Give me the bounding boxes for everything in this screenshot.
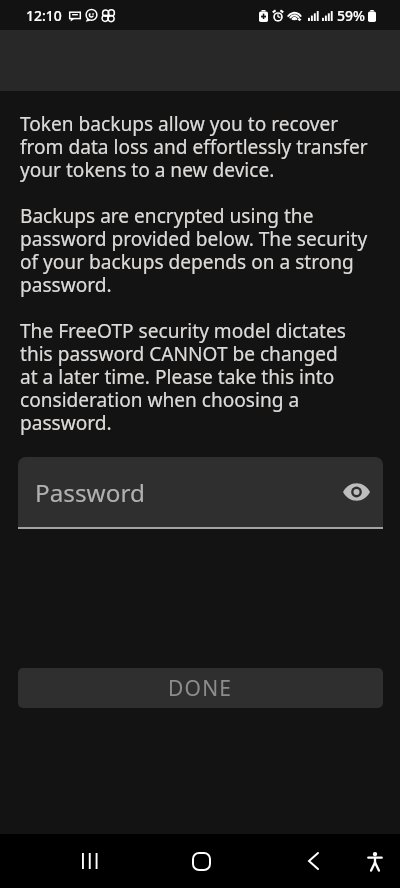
staticText: Password: [35, 476, 145, 509]
staticText: 12:10: [26, 6, 62, 25]
staticText: Token backups allow you to recover from …: [20, 113, 384, 435]
button[interactable]: Back: [287, 834, 339, 888]
staticText: DONE: [168, 674, 233, 703]
button[interactable]: Password: [18, 457, 383, 527]
button[interactable]: Accessibility: [349, 834, 400, 888]
button[interactable]: Show password: [340, 476, 372, 508]
button[interactable]: Recents: [64, 834, 116, 888]
button[interactable]: DONE: [18, 668, 383, 708]
staticText: 59%: [337, 6, 365, 25]
button[interactable]: Home: [175, 834, 227, 888]
